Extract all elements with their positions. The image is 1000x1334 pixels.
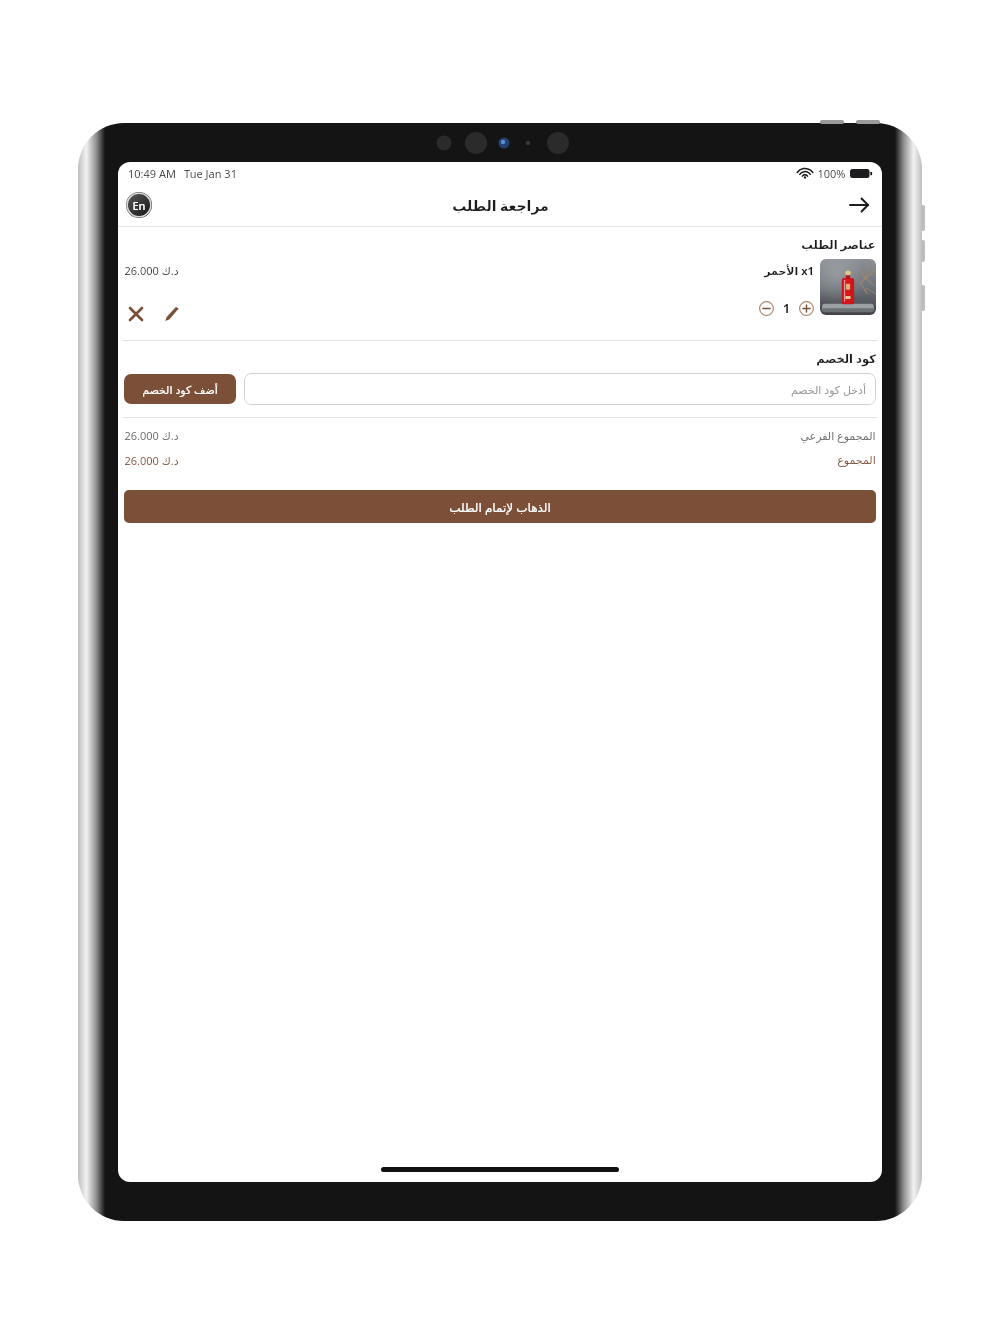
- button[interactable]: Remove item: [124, 302, 148, 326]
- button[interactable]: أدخل كود الخصم: [244, 373, 876, 405]
- staticText: الذهاب لإتمام الطلب: [449, 499, 551, 515]
- button[interactable]: Product image: [820, 259, 876, 315]
- staticText: Tue Jan 31: [184, 166, 237, 181]
- button[interactable]: Increase quantity: [799, 301, 814, 316]
- staticText: أضف كود الخصم: [142, 382, 218, 397]
- staticText: كود الخصم: [816, 351, 876, 367]
- staticText: الأحمر x1: [764, 263, 814, 278]
- button[interactable]: Switch language to English: [126, 192, 152, 218]
- staticText: 26.000 د.ك: [124, 453, 179, 468]
- button[interactable]: Edit item: [160, 302, 184, 326]
- staticText: 10:49 AM: [128, 166, 176, 181]
- button[interactable]: Back: [844, 190, 874, 220]
- button[interactable]: أضف كود الخصم: [124, 374, 236, 404]
- staticText: 1: [783, 300, 790, 316]
- staticText: 26.000 د.ك: [124, 263, 179, 278]
- staticText: عناصر الطلب: [801, 237, 876, 253]
- staticText: مراجعة الطلب: [452, 196, 549, 215]
- staticText: المجموع: [837, 454, 876, 467]
- staticText: En: [132, 198, 146, 213]
- button[interactable]: الذهاب لإتمام الطلب: [124, 490, 876, 523]
- button[interactable]: Decrease quantity: [759, 301, 774, 316]
- staticText: المجموع الفرعي: [800, 428, 876, 443]
- staticText: 26.000 د.ك: [124, 428, 179, 443]
- staticText: 100%: [817, 166, 846, 181]
- staticText: أدخل كود الخصم: [791, 382, 866, 397]
